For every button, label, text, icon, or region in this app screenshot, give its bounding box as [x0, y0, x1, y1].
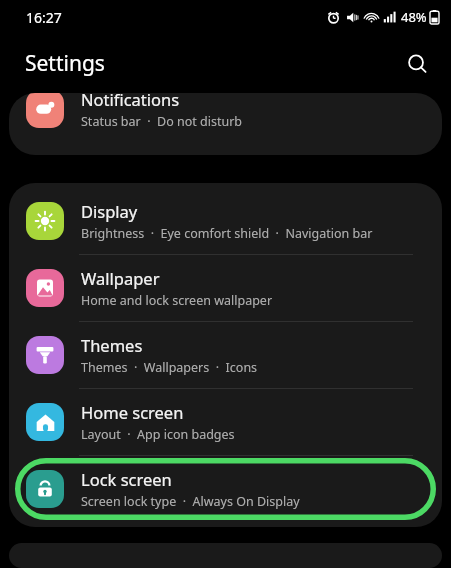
button[interactable]: Wallpaper: [9, 255, 442, 321]
button[interactable]: Notifications: [9, 93, 442, 140]
staticText: Home screen: [81, 401, 184, 423]
staticText: 48%: [401, 8, 427, 26]
staticText: Home and lock screen wallpaper: [81, 292, 273, 309]
button[interactable]: Home screen: [9, 389, 442, 455]
staticText: Brightness · Eye comfort shield · Naviga…: [81, 225, 373, 242]
staticText: Themes · Wallpapers · Icons: [81, 359, 258, 376]
staticText: Layout · App icon badges: [81, 426, 235, 443]
staticText: Lock screen: [81, 468, 172, 490]
staticText: Wallpaper: [81, 267, 160, 289]
staticText: 16:27: [26, 8, 62, 27]
staticText: Screen lock type · Always On Display: [81, 493, 300, 510]
staticText: Notifications: [81, 93, 180, 110]
staticText: Settings: [25, 49, 105, 78]
staticText: Themes: [81, 334, 143, 356]
button[interactable]: Lock screen: [15, 458, 436, 520]
button[interactable]: Search: [395, 42, 439, 86]
staticText: Display: [81, 200, 138, 222]
staticText: Status bar · Do not disturb: [81, 113, 243, 130]
button[interactable]: Themes: [9, 322, 442, 388]
button[interactable]: Display: [9, 188, 442, 254]
